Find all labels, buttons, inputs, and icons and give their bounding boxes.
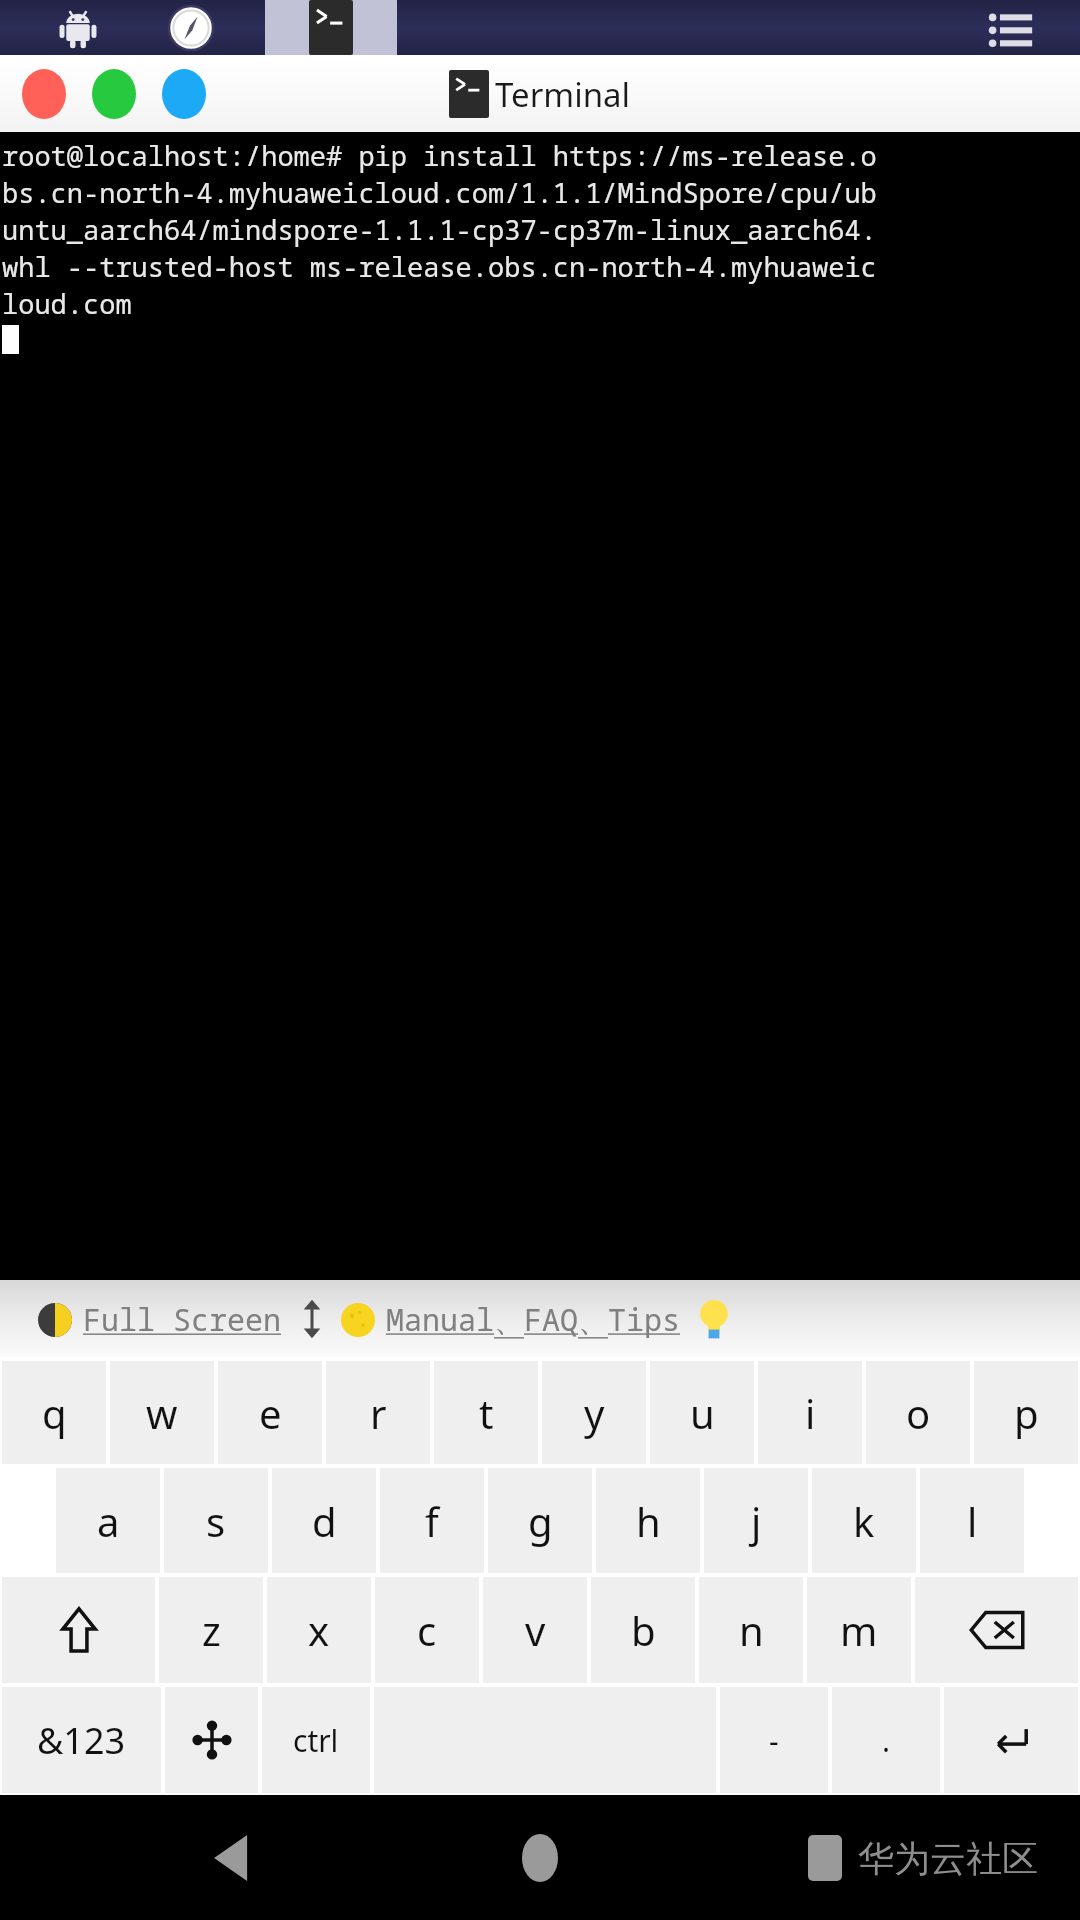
staticText: y (584, 1386, 605, 1440)
button[interactable]: Back (190, 1818, 270, 1898)
staticText: b (631, 1603, 656, 1657)
staticText: t (479, 1386, 494, 1440)
button[interactable]: m (807, 1577, 911, 1683)
button[interactable]: k (812, 1468, 916, 1573)
button[interactable]: Move (165, 1687, 258, 1793)
button[interactable]: . (832, 1687, 940, 1793)
staticText: s (206, 1494, 226, 1548)
staticText: ctrl (293, 1720, 339, 1761)
staticText: e (259, 1386, 282, 1440)
button[interactable]: w (110, 1361, 214, 1464)
staticText: c (417, 1603, 437, 1657)
staticText: - (769, 1720, 779, 1761)
button[interactable]: Home (500, 1818, 580, 1898)
button[interactable]: d (272, 1468, 376, 1573)
staticText: r (370, 1386, 387, 1440)
staticText: z (202, 1603, 221, 1657)
button[interactable]: Resize (295, 1298, 329, 1340)
button[interactable]: v (483, 1577, 587, 1683)
button[interactable]: a (56, 1468, 160, 1573)
staticText: &123 (37, 1716, 126, 1765)
button[interactable]: Enter (944, 1687, 1078, 1793)
staticText: Full Screen (83, 1299, 281, 1340)
button[interactable]: g (488, 1468, 592, 1573)
staticText: v (525, 1603, 546, 1657)
button[interactable]: y (542, 1361, 646, 1464)
button[interactable]: n (699, 1577, 803, 1683)
button[interactable]: Maximize (162, 69, 206, 119)
staticText: o (906, 1386, 931, 1440)
button[interactable]: Android (50, 0, 105, 55)
staticText: q (42, 1386, 67, 1440)
button[interactable]: Minimize (92, 69, 136, 119)
staticText: j (751, 1494, 762, 1548)
staticText: w (146, 1386, 178, 1440)
button[interactable]: Full Screen (38, 1299, 281, 1340)
button[interactable]: Manual, FAQ, Tips (341, 1299, 680, 1340)
staticText: i (805, 1386, 816, 1440)
button[interactable]: Close (22, 69, 66, 119)
staticText: whl --trusted-host ms-release.obs.cn-nor… (2, 248, 877, 285)
staticText: Manual、FAQ、Tips (386, 1299, 680, 1340)
staticText: Terminal (495, 72, 631, 117)
button[interactable]: Menu (982, 0, 1040, 55)
button[interactable]: r (326, 1361, 430, 1464)
staticText: m (840, 1603, 878, 1657)
button[interactable]: Backspace (915, 1577, 1078, 1683)
staticText: root@localhost:/home# pip install https:… (2, 137, 877, 174)
button[interactable]: Terminal tab (265, 0, 397, 55)
button[interactable]: &123 (2, 1687, 161, 1793)
button[interactable]: i (758, 1361, 862, 1464)
button[interactable]: t (434, 1361, 538, 1464)
staticText: h (636, 1494, 661, 1548)
button[interactable]: j (704, 1468, 808, 1573)
staticText: d (312, 1494, 337, 1548)
button[interactable]: Tips (696, 1296, 732, 1342)
button[interactable]: l (920, 1468, 1024, 1573)
button[interactable]: Browser (163, 0, 218, 55)
staticText: 华为云社区 (858, 1836, 1038, 1881)
staticText: n (739, 1603, 764, 1657)
button[interactable]: b (591, 1577, 695, 1683)
button[interactable]: ctrl (262, 1687, 370, 1793)
button[interactable]: p (974, 1361, 1078, 1464)
staticText: p (1014, 1386, 1039, 1440)
button[interactable]: f (380, 1468, 484, 1573)
staticText: bs.cn-north-4.myhuaweicloud.com/1.1.1/Mi… (2, 174, 877, 211)
button[interactable]: q (2, 1361, 106, 1464)
button[interactable]: z (159, 1577, 263, 1683)
staticText: a (97, 1494, 120, 1548)
staticText: f (425, 1494, 439, 1548)
button[interactable]: x (267, 1577, 371, 1683)
staticText: loud.com (2, 285, 132, 322)
button[interactable]: c (375, 1577, 479, 1683)
staticText: . (882, 1720, 891, 1761)
button[interactable]: o (866, 1361, 970, 1464)
staticText: x (308, 1603, 330, 1657)
staticText: untu_aarch64/mindspore-1.1.1-cp37-cp37m-… (2, 211, 877, 248)
button[interactable]: u (650, 1361, 754, 1464)
button[interactable]: Shift (2, 1577, 155, 1683)
button[interactable]: s (164, 1468, 268, 1573)
button[interactable]: h (596, 1468, 700, 1573)
button[interactable]: - (720, 1687, 828, 1793)
button[interactable]: e (218, 1361, 322, 1464)
button[interactable]: Recents (808, 1835, 1038, 1881)
staticText: k (853, 1494, 875, 1548)
staticText: u (690, 1386, 715, 1440)
staticText: l (967, 1494, 978, 1548)
staticText: g (528, 1494, 553, 1548)
